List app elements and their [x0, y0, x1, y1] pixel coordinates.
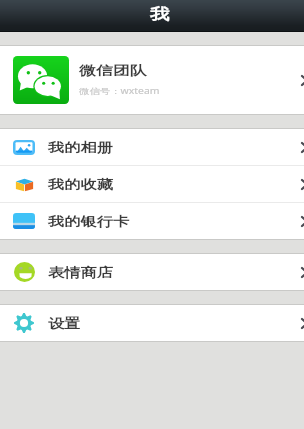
button[interactable]: 我的收藏: [0, 166, 304, 202]
staticText: 我: [150, 5, 169, 24]
button[interactable]: 我的相册: [0, 129, 304, 165]
other: Open: [301, 318, 304, 329]
staticText: 微信团队: [79, 62, 147, 78]
button[interactable]: 微信团队: [0, 46, 304, 114]
other: Open: [301, 216, 304, 227]
other: Open: [301, 267, 304, 278]
button[interactable]: 设置: [0, 305, 304, 341]
staticText: 我的银行卡: [48, 214, 129, 230]
staticText: 微信号：wxteam: [79, 85, 160, 96]
other: Open: [301, 75, 304, 86]
button[interactable]: 我的银行卡: [0, 203, 304, 239]
staticText: 我的收藏: [48, 177, 114, 193]
button[interactable]: 表情商店: [0, 254, 304, 290]
staticText: 表情商店: [48, 265, 114, 281]
other: Open: [301, 142, 304, 153]
other: Open: [301, 179, 304, 190]
staticText: 我的相册: [48, 140, 114, 156]
staticText: 设置: [48, 316, 81, 332]
